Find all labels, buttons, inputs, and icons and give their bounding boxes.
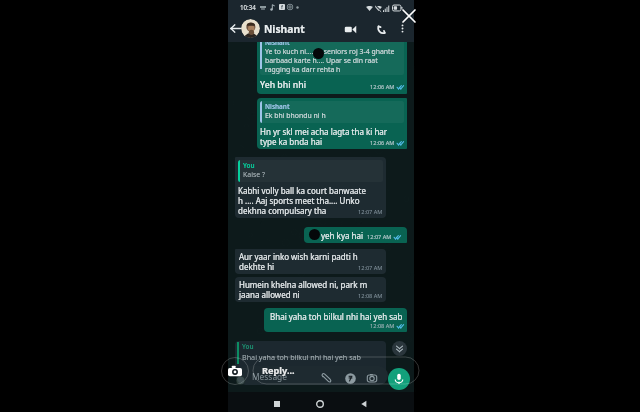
staticText: Kaise ? [243,170,374,179]
staticText: Nishant [265,38,290,47]
button[interactable]: Humein khelna allowed ni, park m jaana a… [235,277,386,302]
button[interactable]: Record voice message [388,368,410,390]
staticText: Aur yaar inko wish karni padti h dekhte … [239,251,370,272]
staticText: Bhai yaha toh bilkul nhi hai yeh sab [242,352,362,362]
button[interactable]: Scroll to bottom [392,341,407,356]
button[interactable]: Nishant [257,35,407,94]
button[interactable]: Video call [344,23,357,36]
staticText: Message [252,371,287,382]
staticText: Reply... [262,364,295,377]
button[interactable]: Voice call [375,23,388,36]
button[interactable]: Back [357,397,371,411]
staticText: 10:34 [240,3,256,11]
staticText: 12:08 AM [358,292,383,300]
button[interactable]: Profile photo [241,19,260,38]
staticText: Kabhi volly ball ka court banwaate h ...… [238,185,371,216]
staticText: yeh kya hai [321,230,364,241]
staticText: 12:07 AM [367,233,392,241]
staticText: Nishant [264,22,305,36]
button[interactable]: Aur yaar inko wish karni padti h dekhte … [235,249,386,274]
button[interactable]: Home [313,397,327,411]
button[interactable] [236,366,388,385]
button[interactable]: Back [229,22,242,35]
staticText: You [243,161,255,170]
staticText: 12:07 AM [358,208,383,216]
staticText: Ek bhi bhondu ni h [265,111,396,120]
button[interactable]: yeh kya hai [304,227,407,243]
staticText: Hn yr skl mei acha lagta tha ki har type… [260,126,394,147]
staticText: Humein khelna allowed ni, park m jaana a… [239,279,370,300]
staticText: f [281,4,283,10]
button[interactable]: You [235,157,386,218]
staticText: 12:08 AM [370,322,395,330]
button[interactable]: Camera [228,365,242,377]
staticText: Ye to kuch ni.... seniors roj 3-4 ghante… [265,47,396,74]
button[interactable]: Close [403,10,415,22]
staticText: 12:07 AM [358,264,383,272]
button[interactable]: More options [397,23,408,34]
button[interactable]: Nishant [257,98,407,149]
staticText: You [242,342,254,351]
button[interactable]: Recents [270,397,284,411]
staticText: Bhai yaha toh bilkul nhi hai yeh sab [270,311,403,322]
staticText: 12:06 AM [370,139,395,147]
button[interactable]: Bhai yaha toh bilkul nhi hai yeh sab [264,308,407,332]
staticText: Nishant [265,102,290,111]
staticText: Yeh bhi nhi [260,79,307,91]
staticText: 12:06 AM [370,83,395,91]
